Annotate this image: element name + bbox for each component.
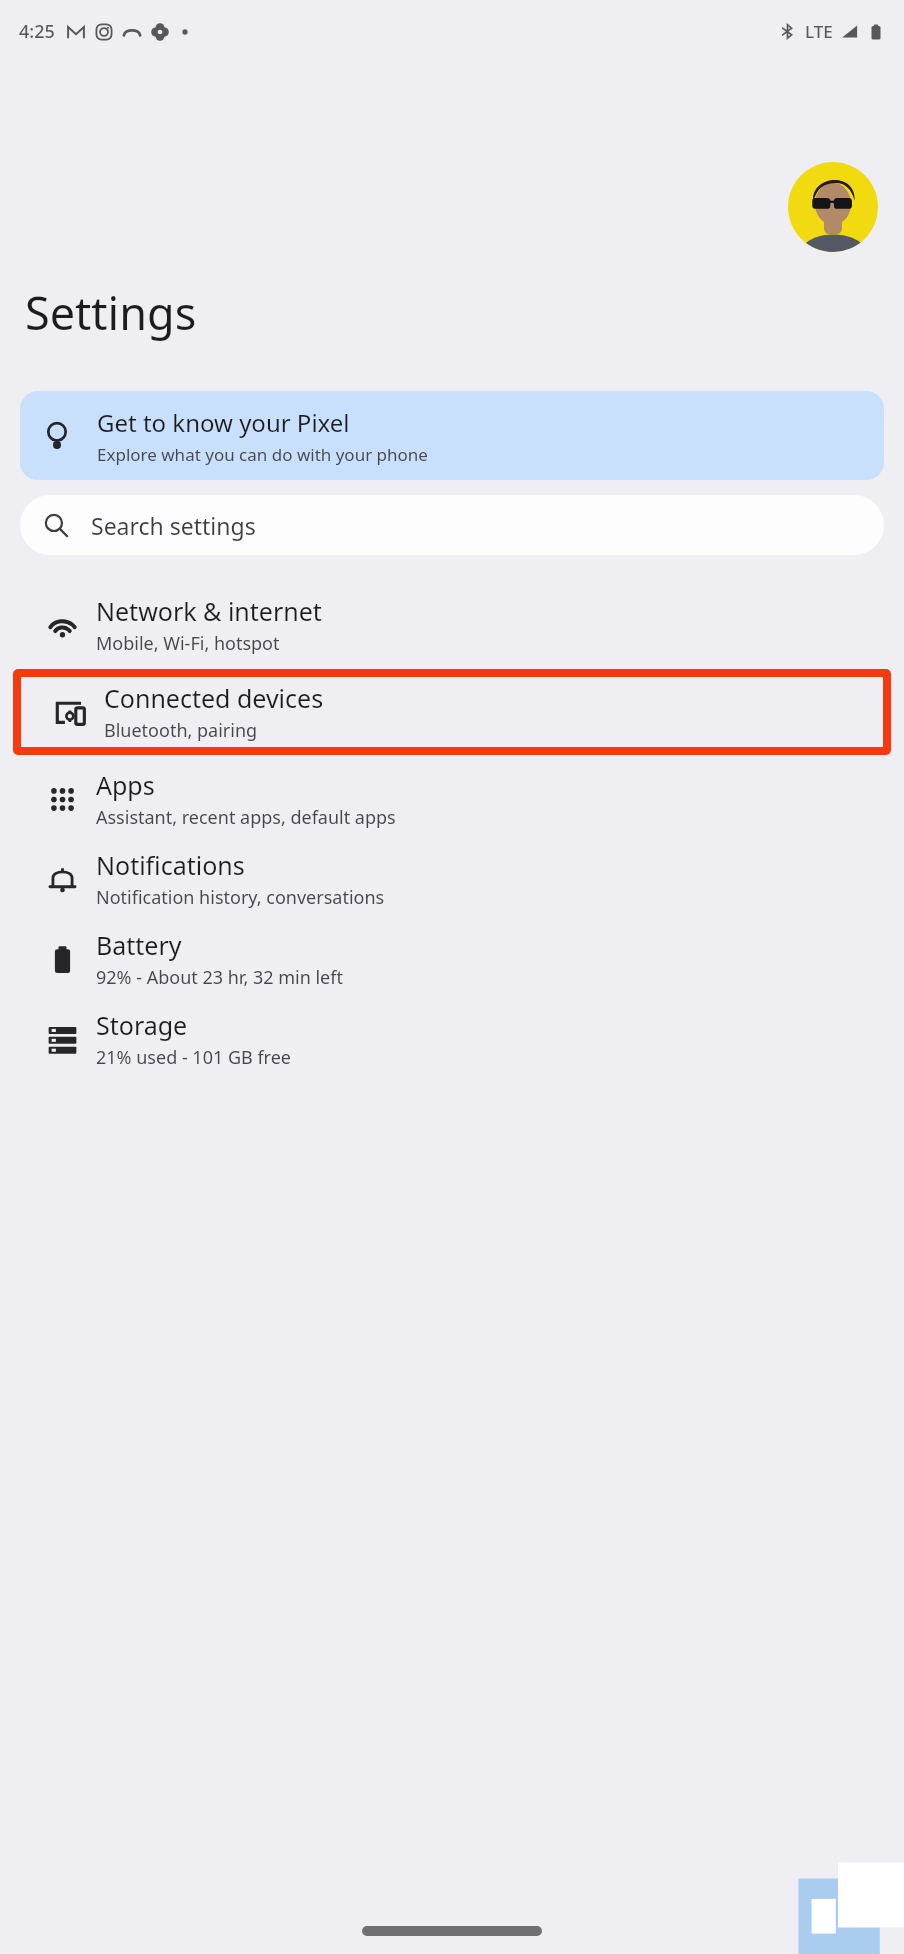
staticText: Notifications: [96, 848, 245, 882]
staticText: Apps: [96, 768, 155, 802]
button[interactable]: Battery: [0, 919, 904, 999]
button[interactable]: Search settings: [20, 495, 884, 555]
staticText: Mobile, Wi-Fi, hotspot: [96, 631, 280, 656]
staticText: Assistant, recent apps, default apps: [96, 805, 396, 830]
button[interactable]: Apps: [0, 759, 904, 839]
staticText: 4:25: [19, 19, 55, 44]
button[interactable]: Connected devices: [21, 677, 883, 747]
staticText: Network & internet: [96, 594, 322, 628]
button[interactable]: Notifications: [0, 839, 904, 919]
staticText: Settings: [25, 282, 197, 343]
staticText: Explore what you can do with your phone: [97, 443, 428, 466]
staticText: Connected devices: [104, 681, 324, 715]
staticText: LTE: [805, 20, 833, 43]
staticText: Bluetooth, pairing: [104, 718, 258, 743]
staticText: 21% used - 101 GB free: [96, 1045, 291, 1070]
staticText: Get to know your Pixel: [97, 406, 350, 439]
button[interactable]: Account profile picture: [788, 162, 878, 252]
staticText: Storage: [96, 1008, 188, 1042]
staticText: Battery: [96, 928, 182, 962]
staticText: Notification history, conversations: [96, 885, 385, 910]
button[interactable]: Storage: [0, 999, 904, 1079]
staticText: Search settings: [91, 510, 256, 541]
staticText: 92% - About 23 hr, 32 min left: [96, 965, 343, 990]
button[interactable]: Get to know your Pixel: [20, 391, 884, 480]
button[interactable]: Network & internet: [0, 585, 904, 665]
